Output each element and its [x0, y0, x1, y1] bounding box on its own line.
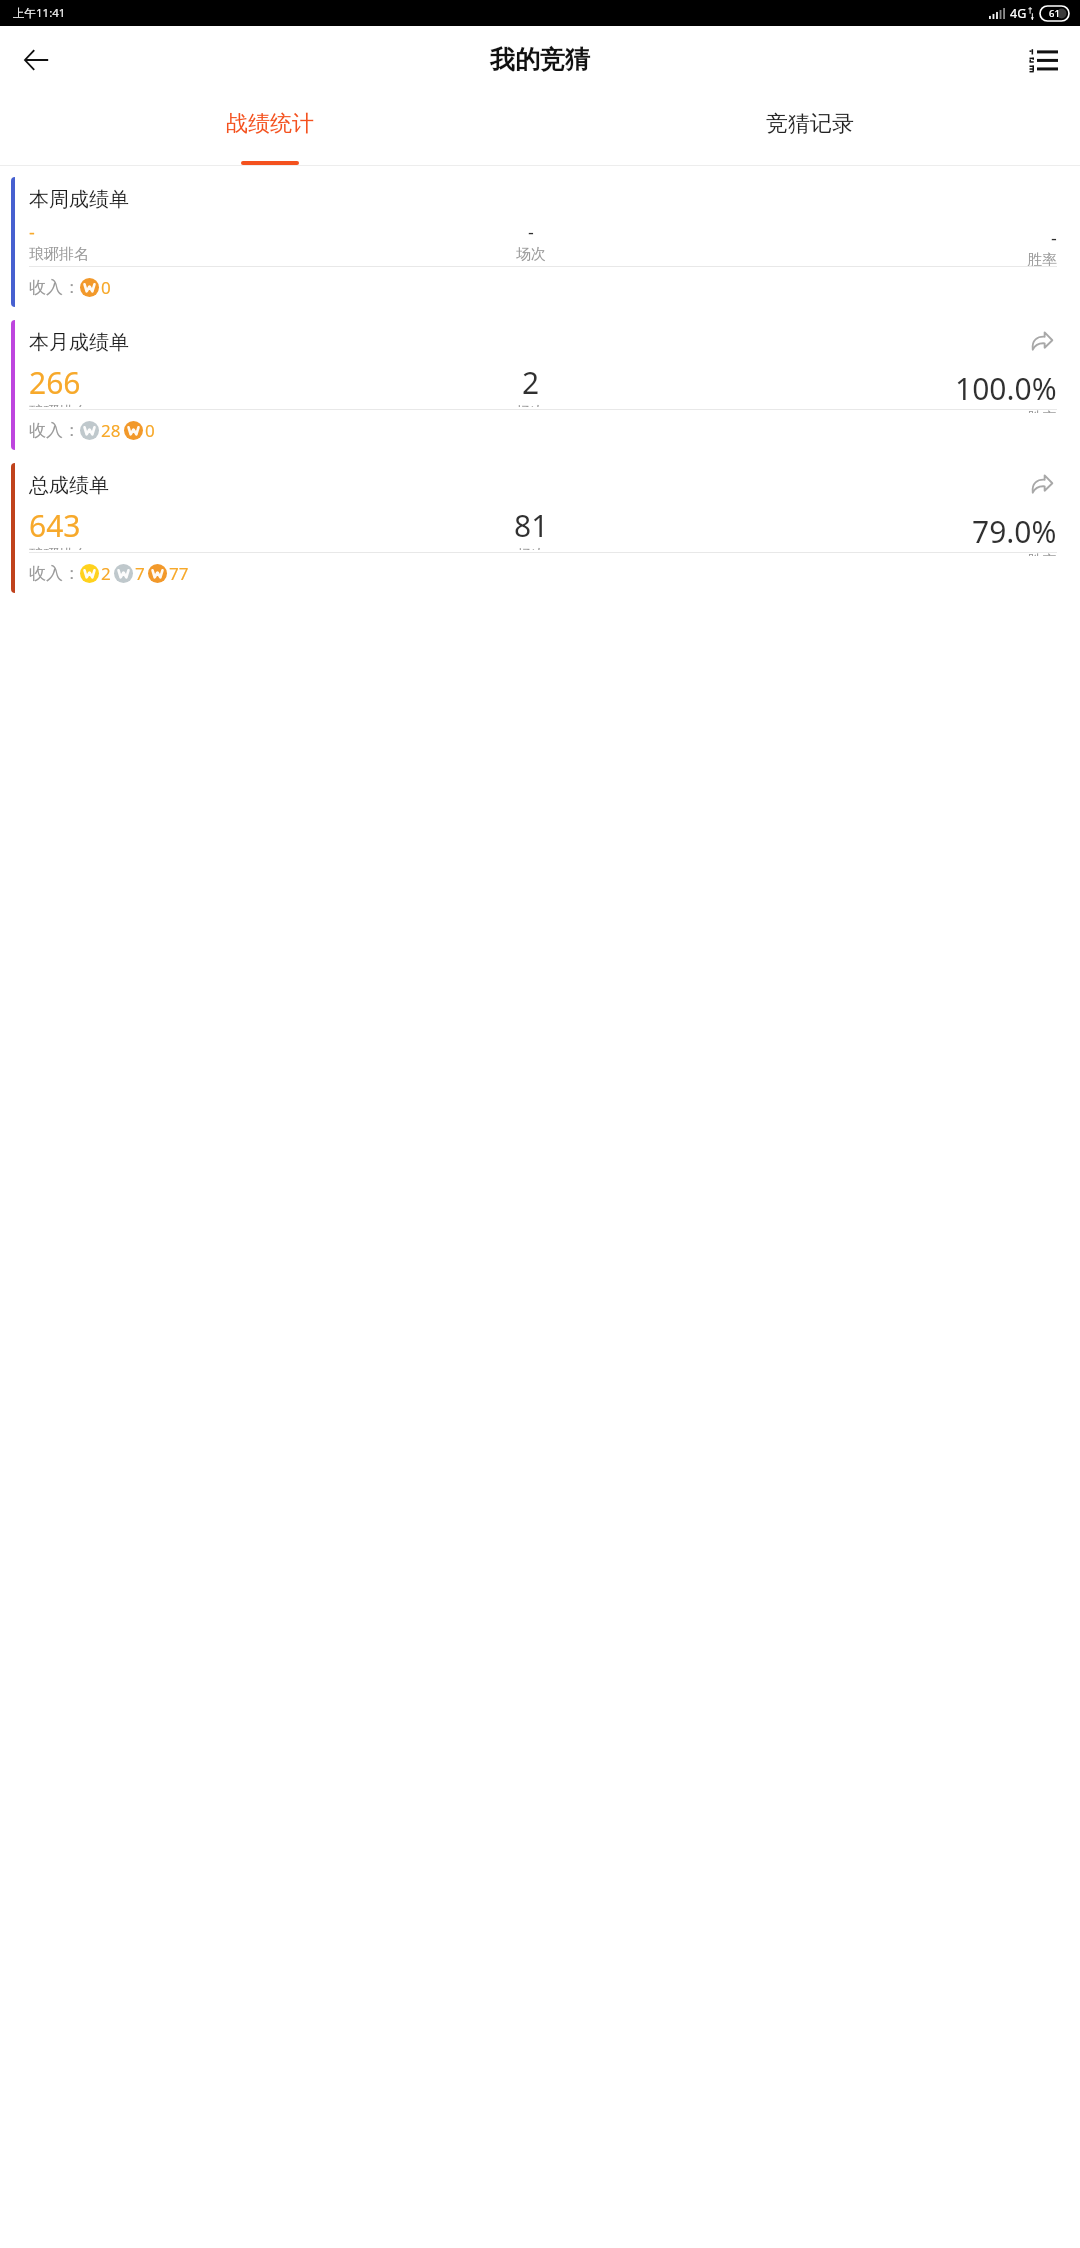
- staticText: 79.0%: [972, 511, 1057, 552]
- staticText: 战绩统计: [226, 110, 314, 138]
- staticText: 场次: [517, 546, 547, 550]
- staticText: 本月成绩单: [29, 330, 129, 355]
- staticText: 7: [135, 562, 145, 585]
- button[interactable]: 本月成绩单: [11, 320, 1069, 450]
- staticText: 0: [145, 419, 155, 442]
- staticText: 胜率: [1027, 409, 1057, 413]
- staticText: 琅琊排名: [29, 546, 89, 550]
- staticText: 琅琊排名: [29, 403, 89, 407]
- staticText: 28: [101, 419, 121, 442]
- staticText: 643: [29, 505, 81, 546]
- staticText: 本周成绩单: [29, 187, 129, 212]
- staticText: 总成绩单: [29, 473, 109, 498]
- staticText: 2: [101, 562, 111, 585]
- button[interactable]: 本周成绩单: [11, 177, 1069, 307]
- staticText: 上午11:41: [13, 5, 66, 21]
- staticText: 胜率: [1027, 552, 1057, 556]
- staticText: 77: [169, 562, 189, 585]
- staticText: 我的竞猜: [490, 44, 590, 75]
- staticText: 2: [522, 362, 540, 403]
- button[interactable]: Share: [1027, 470, 1057, 500]
- staticText: 收入：: [29, 277, 80, 298]
- staticText: 0: [101, 276, 111, 299]
- staticText: 收入：: [29, 420, 80, 441]
- staticText: 竞猜记录: [766, 110, 854, 138]
- button[interactable]: 战绩统计: [0, 93, 540, 165]
- button[interactable]: Ranking list: [1018, 35, 1068, 85]
- staticText: 场次: [516, 245, 546, 264]
- staticText: 场次: [516, 403, 546, 407]
- button[interactable]: Share: [1027, 327, 1057, 357]
- staticText: -: [528, 220, 534, 245]
- staticText: 收入：: [29, 563, 80, 584]
- button[interactable]: 总成绩单: [11, 463, 1069, 593]
- staticText: 100.0%: [955, 368, 1057, 409]
- staticText: 266: [29, 362, 81, 403]
- button[interactable]: 竞猜记录: [540, 93, 1080, 165]
- staticText: 胜率: [1027, 251, 1057, 270]
- staticText: -: [29, 220, 35, 245]
- staticText: 4G: [1010, 5, 1027, 22]
- button[interactable]: Back: [10, 34, 62, 86]
- staticText: 81: [514, 505, 549, 546]
- staticText: 61: [1049, 7, 1060, 20]
- staticText: 琅琊排名: [29, 245, 89, 264]
- staticText: -: [1051, 226, 1057, 251]
